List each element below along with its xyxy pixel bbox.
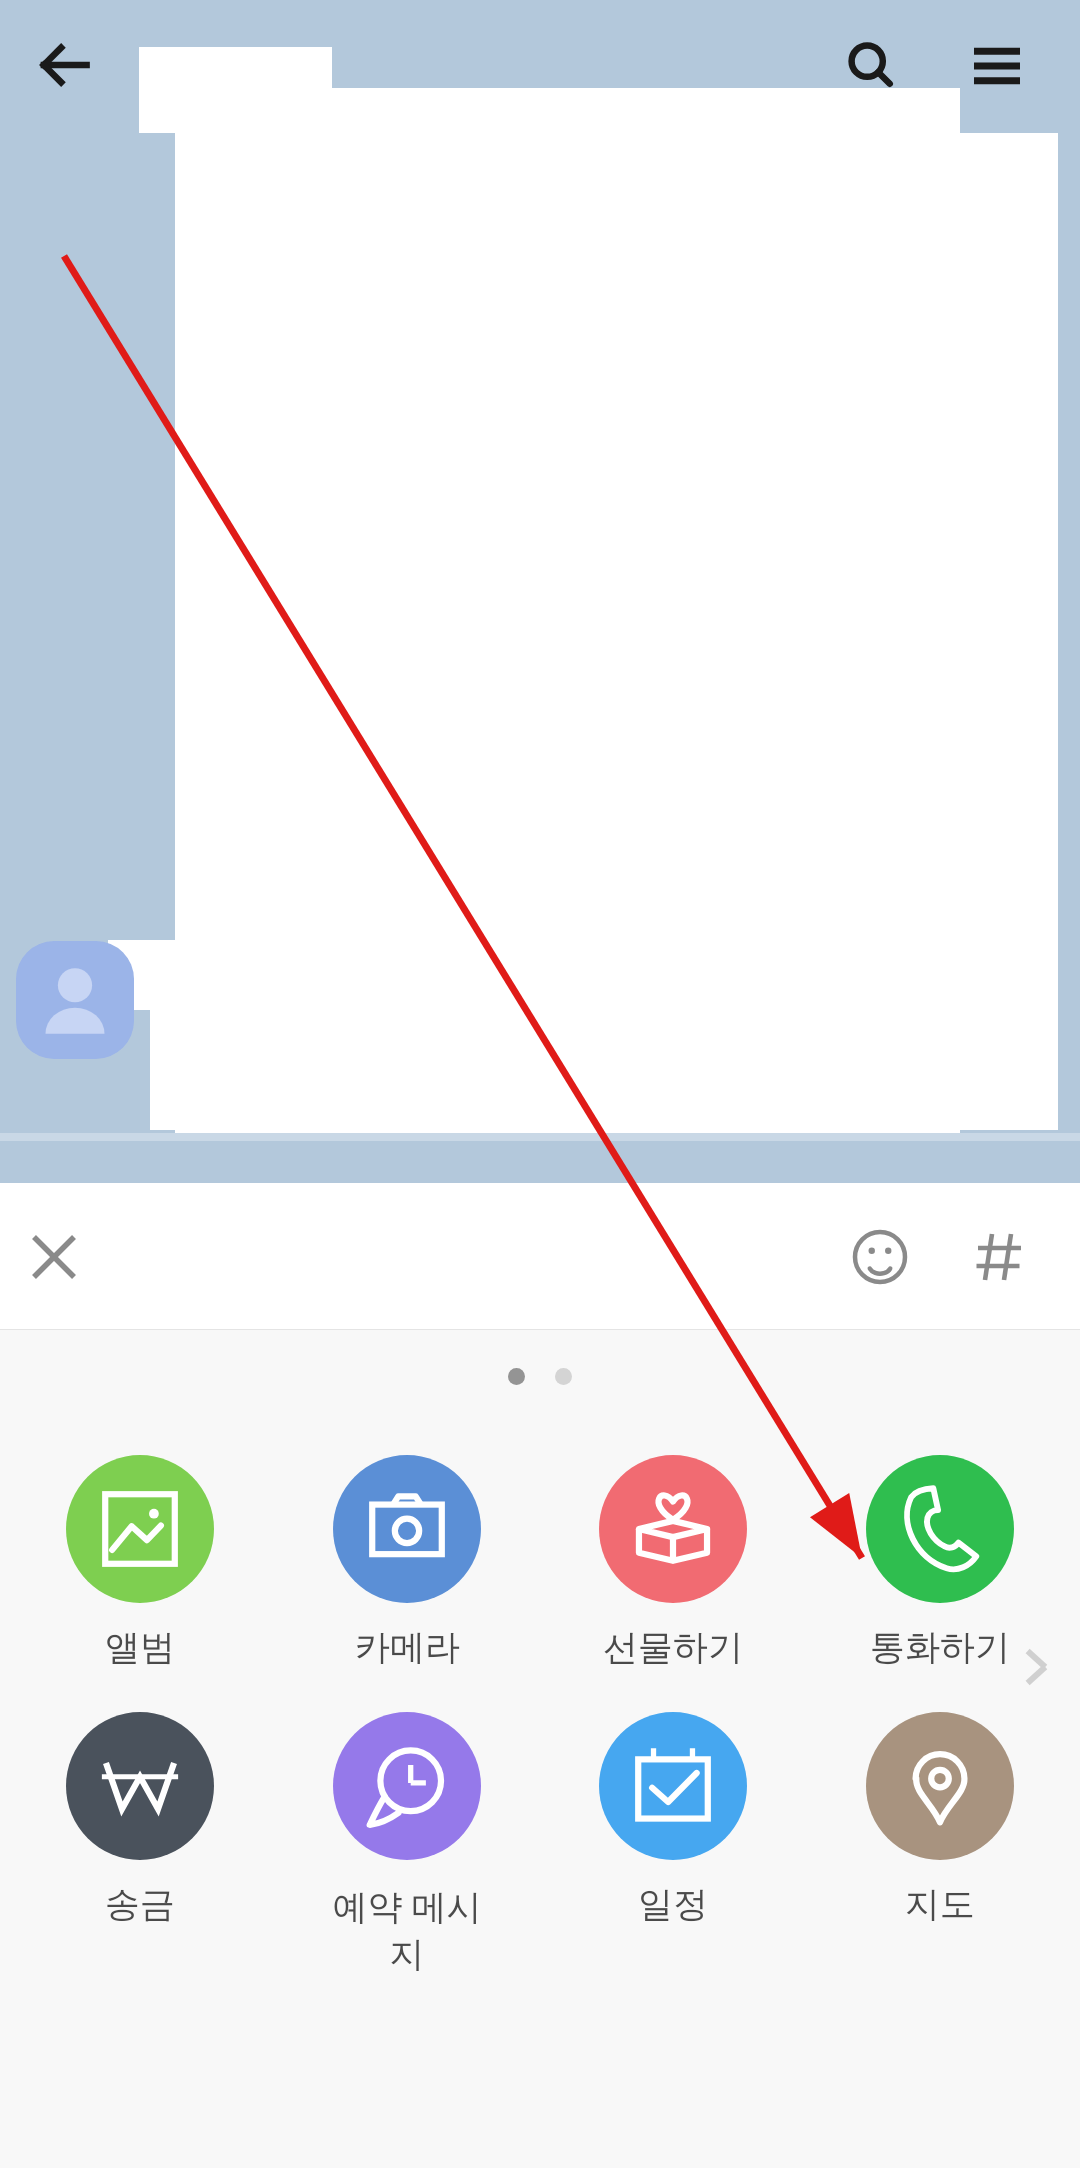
staticText: 앨범: [105, 1625, 175, 1669]
button[interactable]: 송금: [52, 1712, 228, 1926]
button[interactable]: 지도: [852, 1712, 1028, 1926]
button[interactable]: Profile: [16, 941, 134, 1059]
button[interactable]: 통화하기: [852, 1455, 1028, 1669]
button[interactable]: Search: [830, 24, 914, 108]
button[interactable]: 일정: [585, 1712, 761, 1926]
button[interactable]: 선물하기: [585, 1455, 761, 1669]
button[interactable]: Back: [28, 28, 102, 102]
button[interactable]: 예약 메시지: [319, 1712, 495, 1977]
staticText: 예약 메시지: [319, 1882, 495, 1977]
staticText: 지도: [905, 1882, 975, 1926]
button[interactable]: Close: [20, 1223, 88, 1291]
button[interactable]: 카메라: [319, 1455, 495, 1669]
button[interactable]: Next page: [1000, 1631, 1072, 1703]
staticText: 일정: [638, 1882, 708, 1926]
button[interactable]: Menu: [955, 24, 1039, 108]
button[interactable]: Hashtag: [962, 1219, 1038, 1295]
staticText: 통화하기: [870, 1625, 1010, 1669]
button[interactable]: 앨범: [52, 1455, 228, 1669]
staticText: 선물하기: [603, 1625, 743, 1669]
staticText: 송금: [105, 1882, 175, 1926]
staticText: 카메라: [355, 1625, 460, 1669]
button[interactable]: Emoticon: [842, 1219, 918, 1295]
